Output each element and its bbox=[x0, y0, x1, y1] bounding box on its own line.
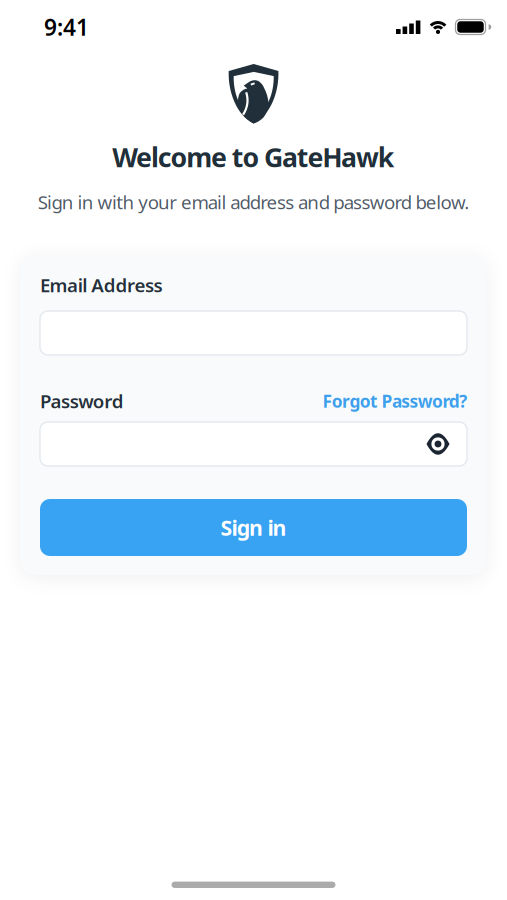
button[interactable]: Password bbox=[40, 422, 467, 466]
staticText: Welcome to GateHawk bbox=[112, 139, 395, 175]
button[interactable]: Email Address bbox=[40, 311, 467, 355]
staticText: 9:41 bbox=[44, 12, 89, 42]
button[interactable]: Sign in bbox=[40, 499, 467, 556]
staticText: Forgot Password? bbox=[322, 389, 467, 412]
button[interactable]: Forgot Password? bbox=[322, 389, 467, 412]
staticText: Password bbox=[40, 389, 124, 413]
staticText: Sign in bbox=[220, 513, 287, 542]
staticText: Sign in with your email address and pass… bbox=[38, 190, 469, 214]
button[interactable]: Show password bbox=[426, 433, 450, 454]
staticText: Email Address bbox=[40, 273, 163, 297]
